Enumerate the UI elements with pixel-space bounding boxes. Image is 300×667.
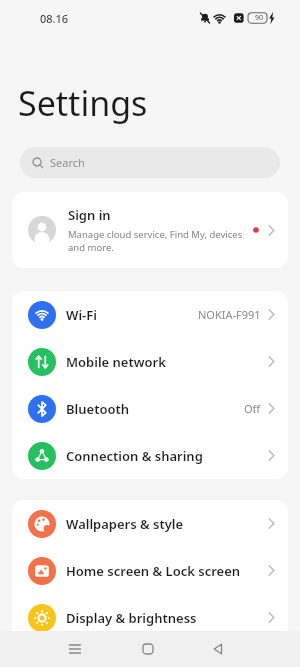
staticText: Home screen & Lock screen [66,562,241,580]
button[interactable]: Connection & sharing [12,432,288,479]
button[interactable]: Wi-Fi [12,291,288,338]
staticText: Display & brightness [66,609,197,627]
staticText: NOKIA-F991 [198,307,261,322]
staticText: Settings [18,80,148,126]
button[interactable]: Sign in [12,192,288,268]
staticText: 08.16 [40,11,69,26]
staticText: 90 [255,13,264,23]
staticText: Wallpapers & style [66,515,184,533]
button[interactable]: Bluetooth [12,385,288,432]
button[interactable] [55,631,95,667]
staticText: Sign in [68,206,111,224]
staticText: Off [244,401,261,416]
staticText: Search [50,155,85,170]
staticText: Bluetooth [66,400,130,418]
button[interactable]: Home screen & Lock screen [12,547,288,594]
staticText: Wi-Fi [66,306,97,324]
button[interactable] [128,631,168,667]
button[interactable]: Mobile network [12,338,288,385]
staticText: Connection & sharing [66,447,203,465]
button[interactable]: Display & brightness [12,594,288,641]
staticText: Mobile network [66,353,166,371]
button[interactable] [198,631,238,667]
button[interactable]: Search [20,147,280,178]
staticText: Manage cloud service, Find My, devices a… [68,228,243,254]
button[interactable]: Wallpapers & style [12,500,288,547]
